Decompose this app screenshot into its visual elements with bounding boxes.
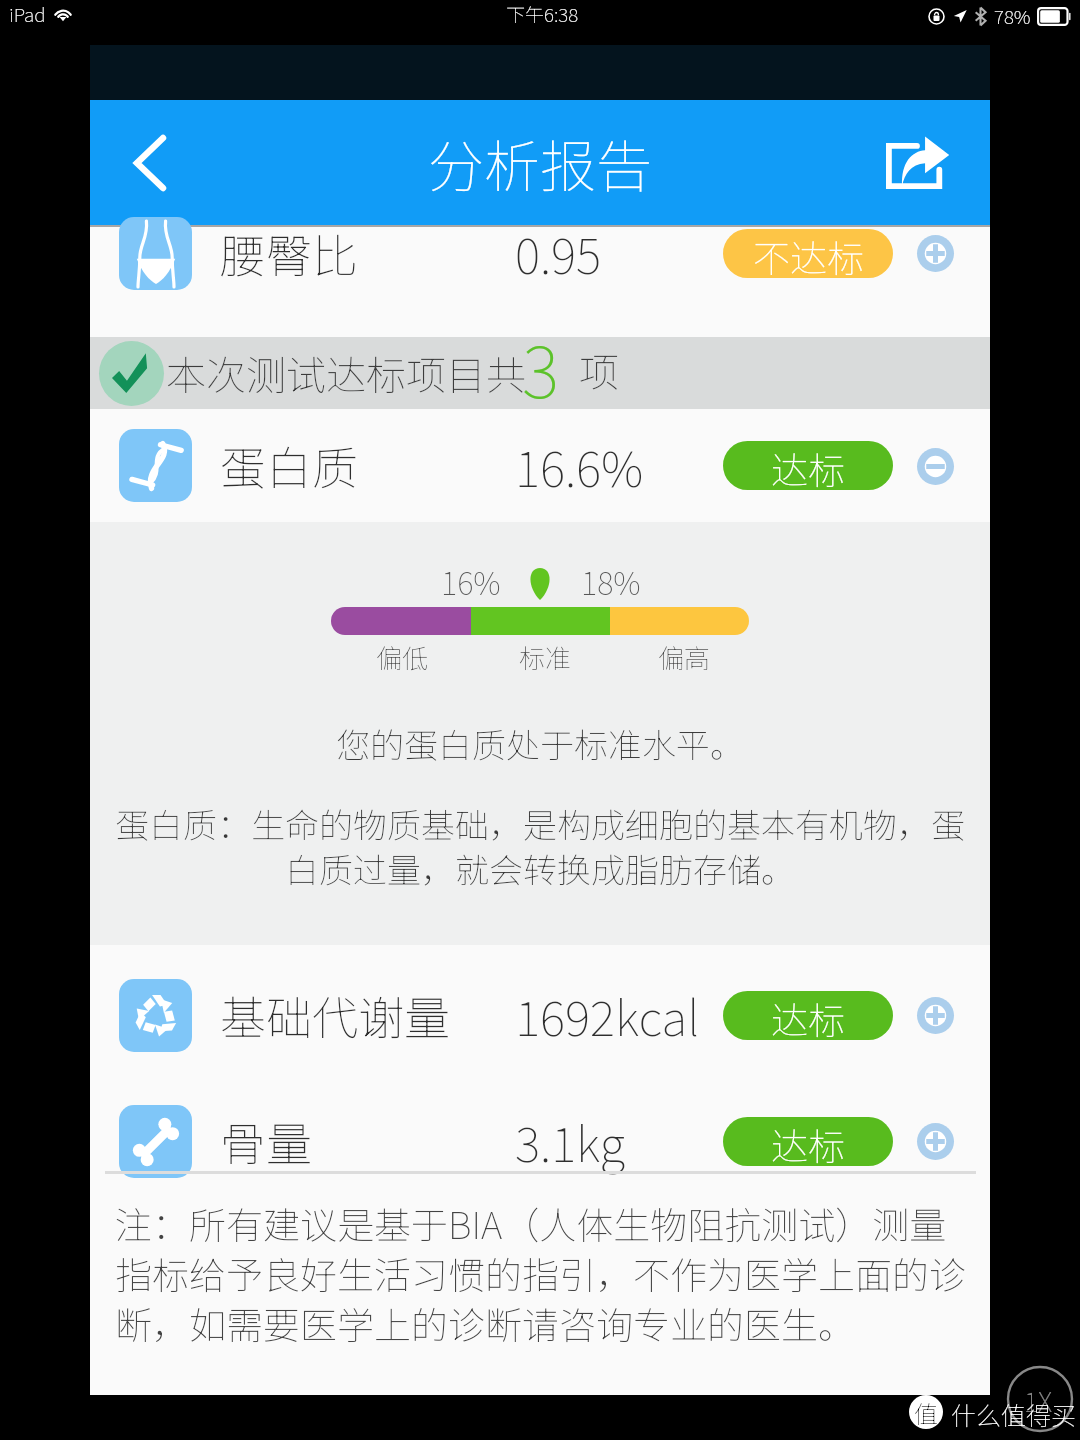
staticText: 腰臀比 [220,220,358,287]
staticText: 3 [522,316,559,419]
button[interactable]: 蛋白质 [90,409,990,522]
staticText: 下午6:38 [506,0,579,28]
staticText: 0.95 [515,218,602,288]
staticText: 分析报告 [428,122,652,203]
button[interactable]: 基础代谢量 [90,952,990,1078]
staticText: 蛋白质：生命的物质基础，是构成细胞的基本有机物，蛋白质过量，就会转换成脂肪存储。 [102,799,978,893]
staticText: 骨量 [220,1108,312,1175]
staticText: 偏低 [376,638,429,676]
staticText: 达标 [771,991,845,1040]
button[interactable]: 达标 [723,1117,893,1166]
button[interactable]: 骨量 [90,1078,990,1204]
button[interactable]: Collapse [913,444,957,488]
button[interactable]: 达标 [723,441,893,490]
staticText: 项 [579,341,619,399]
staticText: 3.1kg [515,1106,625,1176]
staticText: 1692kcal [515,980,700,1050]
staticText: 16% [441,559,501,604]
button[interactable]: Share [871,117,963,209]
staticText: 16.6% [515,431,644,501]
staticText: 注：所有建议是基于BIA（人体生物阻抗测试）测量指标给予良好生活习惯的指引，不作… [115,1196,977,1350]
staticText: 蛋白质 [220,432,358,499]
staticText: 达标 [771,1117,845,1166]
staticText: 偏高 [658,638,711,676]
staticText: 1X [1024,1381,1053,1420]
staticText: 达标 [771,441,845,490]
button[interactable]: 达标 [723,991,893,1040]
staticText: 不达标 [753,229,864,278]
staticText: 本次测试达标项目共 [166,344,526,402]
button[interactable]: 不达标 [723,229,893,278]
staticText: 您的蛋白质处于标准水平。 [90,719,990,768]
staticText: 标准 [519,638,572,676]
button[interactable]: Back [104,117,196,209]
staticText: 基础代谢量 [220,982,450,1049]
staticText: 值 [914,1395,938,1429]
button[interactable]: Expand [913,1119,957,1163]
staticText: iPad [9,0,46,28]
button[interactable]: Expand [913,231,957,275]
staticText: 78% [994,2,1031,30]
staticText: 18% [581,559,641,604]
staticText: 什么值得买 [951,1396,1077,1432]
button[interactable]: 腰臀比 [90,227,990,337]
button[interactable]: Expand [913,993,957,1037]
